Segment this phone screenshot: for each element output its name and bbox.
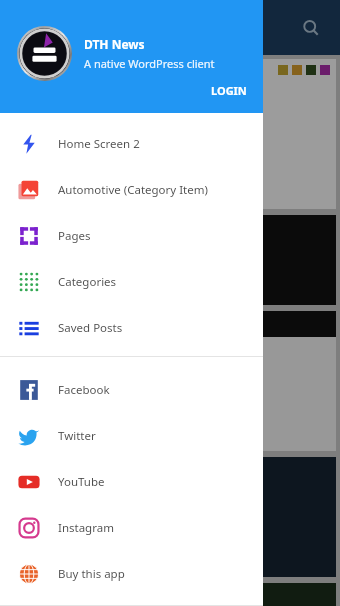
staticText: Saved Posts: [58, 320, 123, 336]
button[interactable]: Search: [296, 13, 326, 43]
other: Pages: [18, 225, 40, 247]
staticText: Pages: [58, 228, 91, 244]
button[interactable]: YouTube: [0, 459, 263, 505]
button[interactable]: Instagram: [0, 505, 263, 551]
staticText: Twitter: [58, 428, 96, 444]
staticText: Home Screen 2: [58, 136, 140, 152]
button[interactable]: LOGIN: [203, 80, 255, 101]
staticText: Automotive (Category Item): [58, 182, 208, 198]
staticText: Facebook: [58, 382, 110, 398]
other: Saved Posts: [18, 317, 40, 339]
other: YouTube: [18, 471, 40, 493]
other: Categories: [18, 271, 40, 293]
other: Home Screen 2: [18, 133, 40, 155]
other: Instagram: [18, 517, 40, 539]
other: Facebook: [18, 379, 40, 401]
staticText: A native WordPress client: [84, 56, 215, 71]
staticText: LOGIN: [211, 83, 247, 98]
staticText: Categories: [58, 274, 117, 290]
other: Buy this app: [18, 563, 40, 585]
staticText: Instagram: [58, 520, 114, 536]
other: Automotive: [18, 179, 40, 201]
button[interactable]: Facebook: [0, 367, 263, 413]
button[interactable]: Categories: [0, 259, 263, 305]
other: Twitter: [18, 425, 40, 447]
staticText: DTH News: [84, 36, 145, 52]
button[interactable]: Buy this app: [0, 551, 263, 597]
staticText: Buy this app: [58, 566, 125, 582]
button[interactable]: Pages: [0, 213, 263, 259]
button[interactable]: Automotive: [0, 167, 263, 213]
button[interactable]: Home Screen 2: [0, 121, 263, 167]
staticText: YouTube: [58, 474, 105, 490]
button[interactable]: Saved Posts: [0, 305, 263, 351]
button[interactable]: Twitter: [0, 413, 263, 459]
